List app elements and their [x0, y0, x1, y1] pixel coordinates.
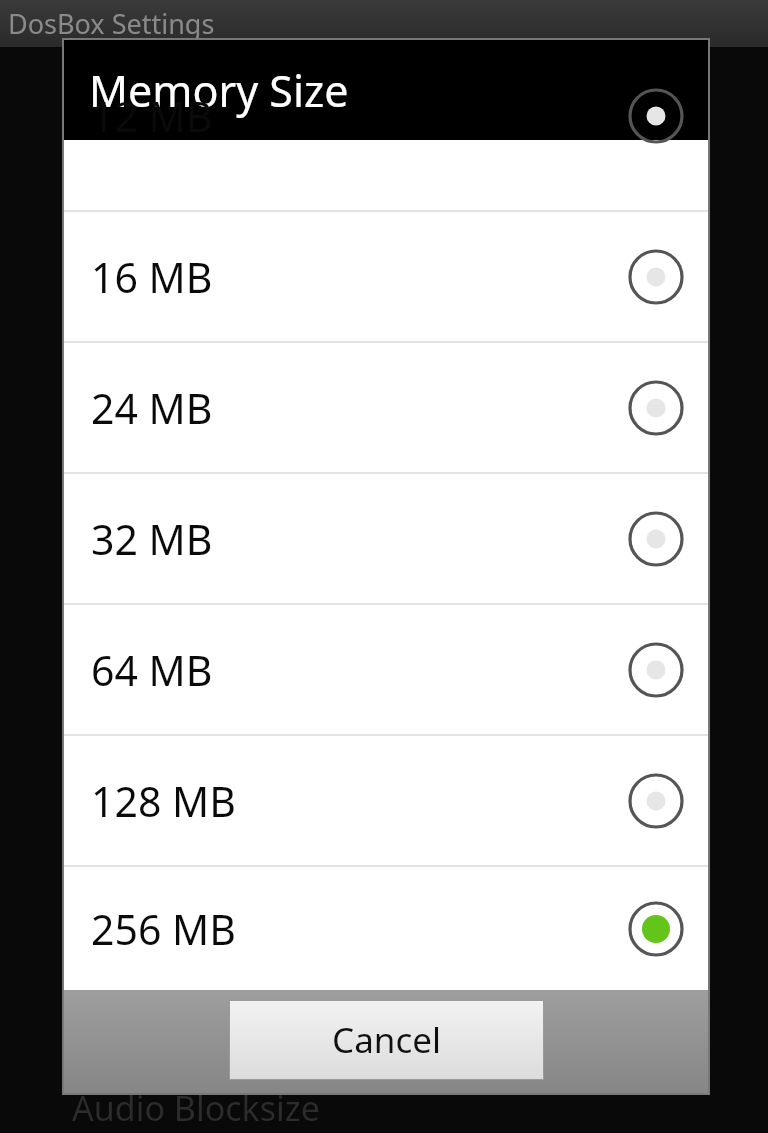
- button[interactable]: 16 MB: [64, 212, 708, 341]
- button[interactable]: Cancel: [230, 1001, 543, 1079]
- staticText: 12 MB: [91, 88, 626, 144]
- staticText: Audio Blocksize: [72, 1085, 320, 1131]
- button[interactable]: 256 MB: [64, 867, 708, 990]
- staticText: DosBox Settings: [8, 5, 215, 42]
- button[interactable]: 128 MB: [64, 736, 708, 865]
- button[interactable]: 64 MB: [64, 605, 708, 734]
- button[interactable]: 24 MB: [64, 343, 708, 472]
- staticText: 24 MB: [91, 380, 626, 436]
- staticText: 256 MB: [91, 901, 626, 957]
- staticText: Memory Size: [89, 61, 349, 120]
- staticText: 128 MB: [91, 773, 626, 829]
- staticText: 64 MB: [91, 642, 626, 698]
- staticText: 32 MB: [91, 511, 626, 567]
- staticText: Cancel: [332, 1016, 441, 1064]
- button[interactable]: 32 MB: [64, 474, 708, 603]
- staticText: 16 MB: [91, 249, 626, 305]
